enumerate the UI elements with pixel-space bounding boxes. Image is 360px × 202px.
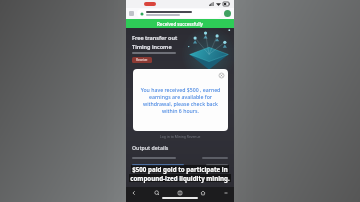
staticText: You have received $500 , earned earnings…: [140, 86, 221, 114]
button[interactable]: Back: [131, 190, 137, 196]
button[interactable]: Profile: [224, 10, 231, 17]
button[interactable]: More options: [223, 190, 229, 196]
staticText: Receive: [136, 58, 148, 62]
staticText: Received successfully: [157, 21, 203, 27]
button[interactable]: Close: [219, 73, 224, 78]
button[interactable]: [126, 175, 234, 182]
button[interactable]: Tabs: [177, 190, 183, 196]
staticText: Log in to Mining Revenue: [160, 134, 201, 139]
button[interactable]: [126, 154, 234, 161]
button[interactable]: Menu: [129, 11, 134, 16]
staticText: Output details: [132, 144, 169, 151]
staticText: Timing income: [132, 43, 172, 50]
button[interactable]: [126, 168, 234, 175]
button[interactable]: [137, 9, 221, 18]
button[interactable]: Receive: [132, 57, 152, 63]
staticText: compound-ized liquidity mining.: [130, 174, 230, 182]
button[interactable]: Home: [200, 190, 206, 196]
button[interactable]: Search: [154, 190, 160, 196]
button[interactable]: Received successfully: [126, 19, 234, 28]
button[interactable]: [126, 161, 234, 168]
staticText: $500 paid gold to participate in: [132, 165, 228, 173]
staticText: Free transfer out: [132, 34, 178, 41]
